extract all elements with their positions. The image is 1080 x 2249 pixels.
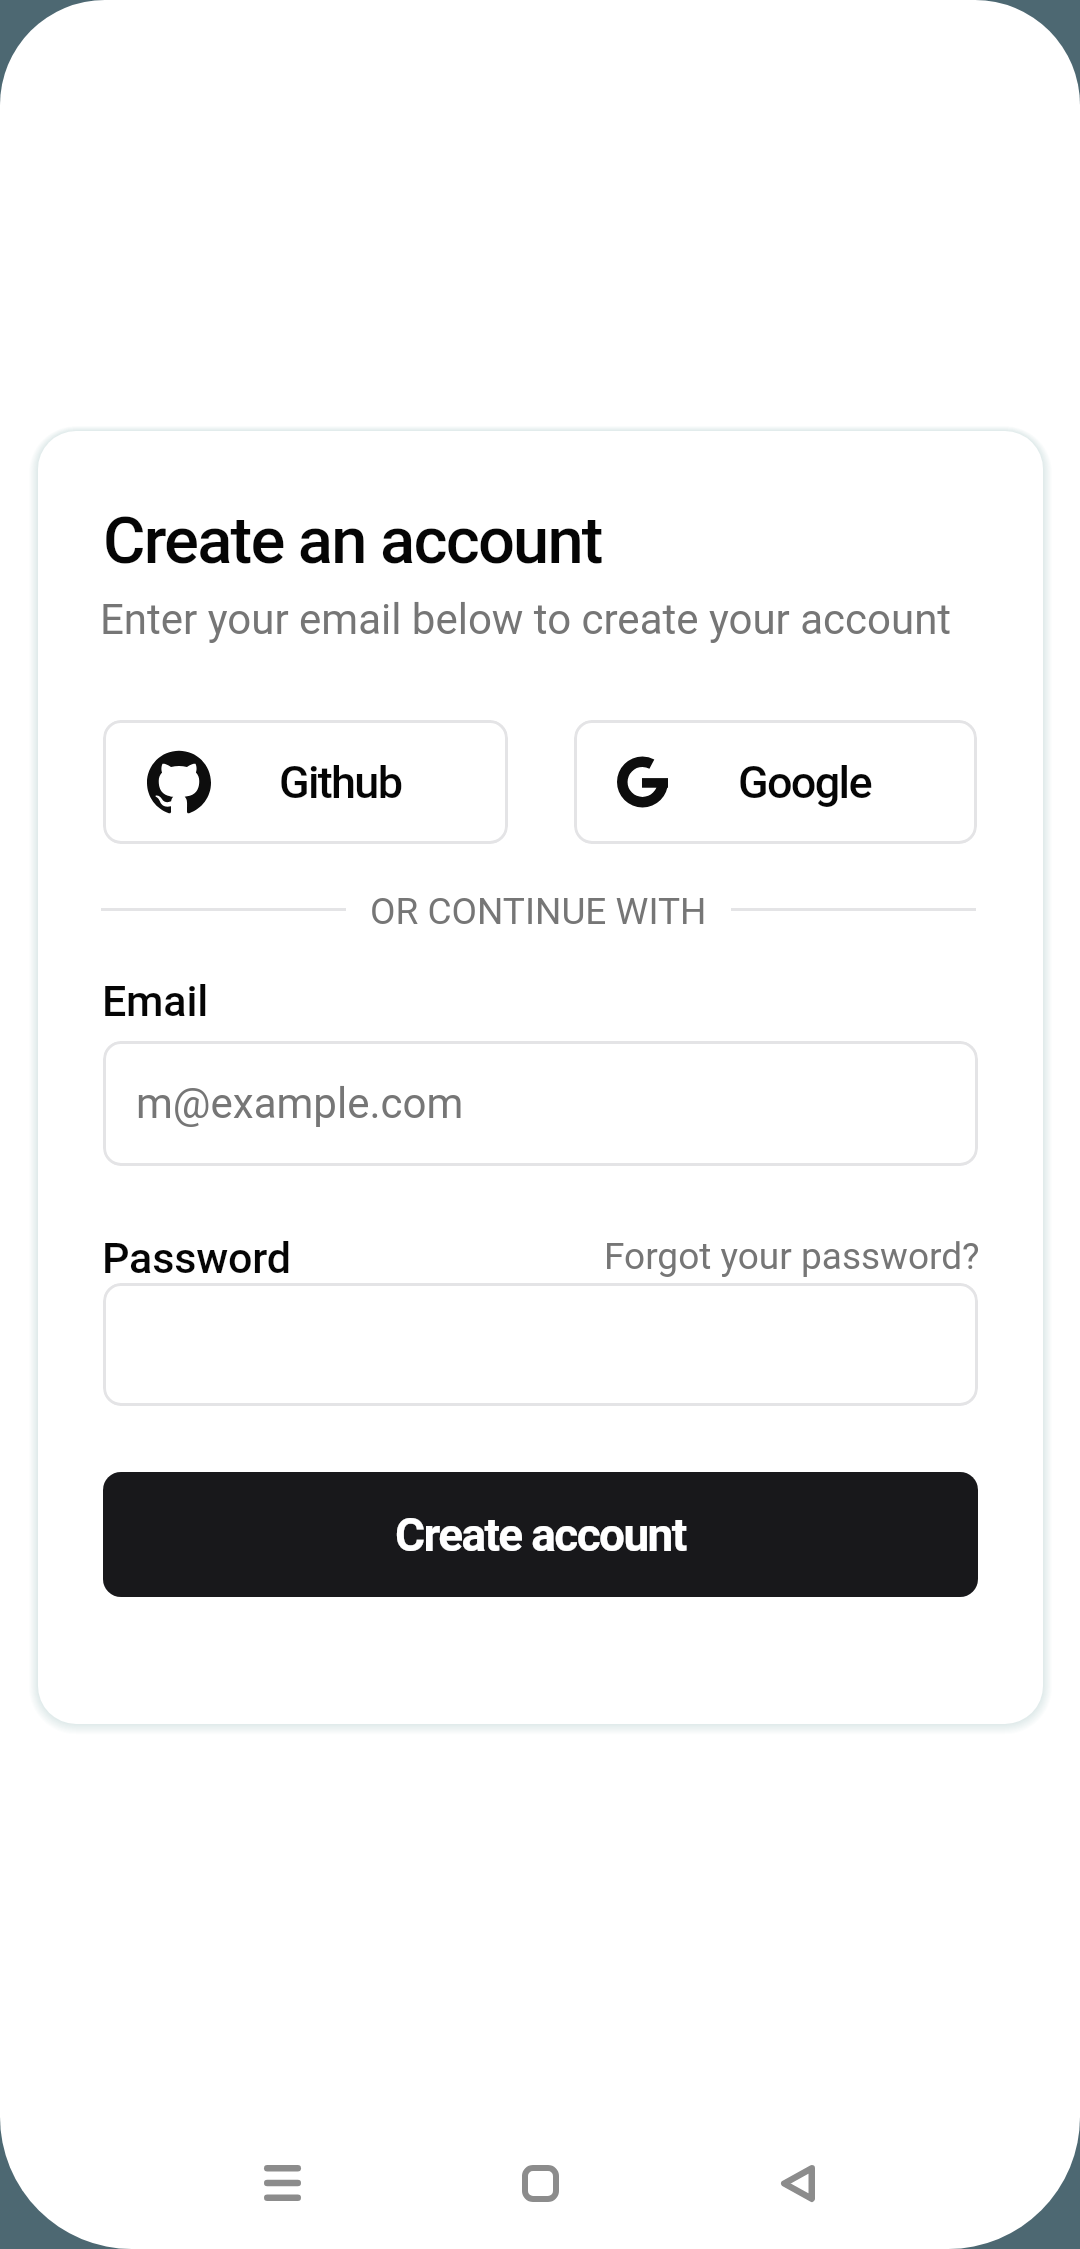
- staticText: Email: [102, 976, 209, 1026]
- button[interactable]: Forgot your password?: [604, 1235, 980, 1278]
- staticText: Enter your email below to create your ac…: [100, 595, 952, 644]
- staticText: Google: [738, 756, 871, 809]
- button[interactable]: Recent apps: [222, 2143, 342, 2223]
- button[interactable]: m@example.com: [103, 1041, 978, 1166]
- staticText: Password: [102, 1233, 291, 1283]
- staticText: Create account: [395, 1508, 686, 1562]
- button[interactable]: Google: [574, 720, 977, 844]
- button[interactable]: [103, 1283, 978, 1406]
- button[interactable]: Github: [103, 720, 508, 844]
- staticText: Forgot your password?: [604, 1235, 980, 1278]
- staticText: OR CONTINUE WITH: [370, 890, 707, 928]
- button[interactable]: Back: [738, 2143, 858, 2223]
- staticText: m@example.com: [136, 1079, 464, 1128]
- staticText: Create an account: [103, 503, 602, 579]
- button[interactable]: Create account: [103, 1472, 978, 1597]
- staticText: Github: [279, 756, 402, 809]
- button[interactable]: Home: [480, 2143, 600, 2223]
